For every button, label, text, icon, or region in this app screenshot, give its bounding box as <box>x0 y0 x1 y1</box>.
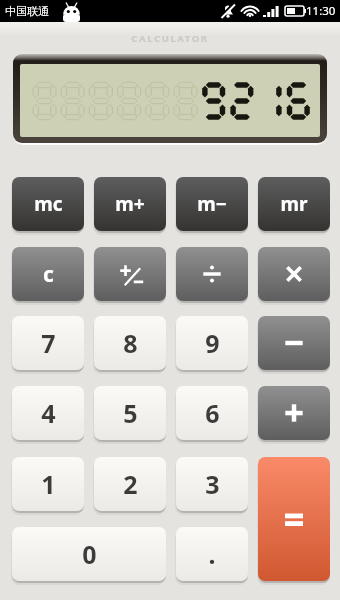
button[interactable]: mr <box>258 177 330 231</box>
staticText: 4 <box>41 396 56 430</box>
staticText: 5 <box>123 396 138 430</box>
staticText: 6 <box>205 396 220 430</box>
button[interactable]: m− <box>176 177 248 231</box>
button[interactable]: plus minus <box>94 247 166 301</box>
button[interactable]: 7 <box>12 316 84 370</box>
button[interactable]: divide <box>176 247 248 301</box>
button[interactable]: mc <box>12 177 84 231</box>
button[interactable]: minus <box>258 316 330 370</box>
staticText: 3 <box>205 467 220 501</box>
button[interactable]: 8 <box>94 316 166 370</box>
button[interactable]: 5 <box>94 386 166 440</box>
button[interactable]: . <box>176 527 248 581</box>
staticText: m+ <box>115 191 145 217</box>
staticText: c <box>43 260 54 289</box>
staticText: m− <box>197 191 227 217</box>
staticText: 9 <box>205 326 220 360</box>
staticText: 0 <box>82 537 97 571</box>
button[interactable]: 1 <box>12 457 84 511</box>
staticText: 8 <box>123 326 138 360</box>
staticText: 7 <box>41 326 56 360</box>
staticText: . <box>208 537 216 571</box>
button[interactable]: m+ <box>94 177 166 231</box>
button[interactable]: c <box>12 247 84 301</box>
button[interactable]: 0 <box>12 527 166 581</box>
button[interactable]: 3 <box>176 457 248 511</box>
staticText: 11:30 <box>306 3 336 19</box>
button[interactable]: 2 <box>94 457 166 511</box>
button[interactable]: plus <box>258 386 330 440</box>
staticText: mc <box>34 191 63 217</box>
staticText: CALCULATOR <box>0 32 340 45</box>
button[interactable]: equals <box>258 457 330 581</box>
staticText: 2 <box>123 467 138 501</box>
button[interactable]: 9 <box>176 316 248 370</box>
button[interactable]: multiply <box>258 247 330 301</box>
button[interactable]: 4 <box>12 386 84 440</box>
staticText: mr <box>280 191 308 217</box>
button[interactable]: 6 <box>176 386 248 440</box>
staticText: 中国联通 <box>5 4 49 18</box>
staticText: 1 <box>41 467 56 501</box>
